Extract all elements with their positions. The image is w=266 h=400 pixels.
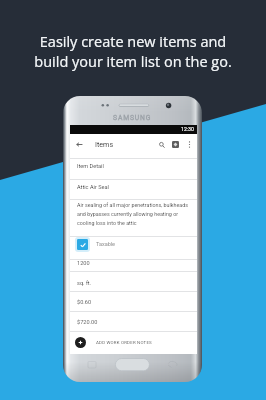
staticText: $720.00 bbox=[77, 319, 98, 326]
button[interactable]: Attic Air Seal bbox=[70, 179, 197, 199]
button[interactable]: Taxable bbox=[70, 236, 197, 259]
button[interactable]: $0.60 bbox=[70, 291, 197, 310]
button[interactable]: Save item bbox=[170, 139, 181, 150]
staticText: SAMSUNG bbox=[113, 114, 152, 122]
staticText: Items bbox=[95, 140, 114, 148]
staticText: Easily create new items and build your i… bbox=[34, 32, 232, 72]
staticText: sq. ft. bbox=[77, 280, 92, 287]
button[interactable]: ADD WORK ORDER NOTES bbox=[70, 331, 197, 354]
staticText: 12:30 bbox=[181, 126, 194, 132]
button[interactable]: Back bbox=[74, 139, 85, 150]
staticText: Item Detail bbox=[77, 163, 104, 170]
staticText: Air sealing of all major penetrations, b… bbox=[77, 202, 188, 226]
staticText: Taxable bbox=[96, 241, 116, 247]
staticText: ADD WORK ORDER NOTES bbox=[96, 340, 152, 345]
button[interactable]: sq. ft. bbox=[70, 271, 197, 292]
staticText: $0.60 bbox=[77, 299, 92, 306]
button[interactable]: More options bbox=[184, 139, 195, 150]
staticText: Attic Air Seal bbox=[77, 184, 109, 191]
button[interactable]: $720.00 bbox=[70, 311, 197, 331]
button[interactable]: Item Detail bbox=[70, 158, 197, 180]
staticText: 1200 bbox=[77, 260, 90, 267]
button[interactable]: Search bbox=[156, 139, 167, 150]
button[interactable]: 1200 bbox=[70, 259, 197, 271]
